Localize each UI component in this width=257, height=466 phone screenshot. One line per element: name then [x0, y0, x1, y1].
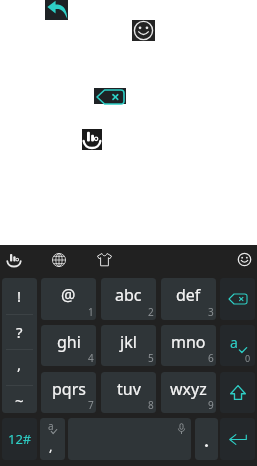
staticText: 1 — [88, 305, 94, 319]
staticText: 2 — [148, 305, 154, 319]
button[interactable]: Theme — [94, 245, 115, 274]
staticText: ghi — [57, 331, 81, 353]
button[interactable]: Backspace — [97, 90, 124, 104]
staticText: def — [176, 284, 201, 306]
staticText: , — [49, 437, 53, 455]
button[interactable]: Keyboard settings — [82, 129, 102, 150]
button[interactable]: abc — [101, 278, 156, 320]
button[interactable]: Undo — [45, 0, 68, 20]
staticText: ! — [17, 286, 22, 306]
staticText: a — [230, 333, 238, 352]
button[interactable]: Emoji — [132, 20, 155, 41]
button[interactable]: jkl — [101, 325, 156, 366]
button[interactable]: @ — [41, 278, 96, 320]
staticText: ? — [16, 322, 23, 342]
button[interactable]: Space — [68, 418, 191, 460]
button[interactable]: Auto correct — [220, 325, 255, 366]
staticText: 12# — [8, 430, 32, 448]
staticText: , — [17, 354, 22, 374]
button[interactable]: 12# — [2, 418, 37, 460]
staticText: jkl — [120, 331, 137, 353]
button[interactable]: Keyboard menu — [3, 245, 24, 274]
staticText: @ — [61, 284, 76, 306]
button[interactable]: wxyz — [161, 372, 216, 413]
button[interactable]: ghi — [41, 325, 96, 366]
button[interactable]: tuv — [101, 372, 156, 413]
button[interactable]: Backspace — [220, 278, 255, 320]
button[interactable]: mno — [161, 325, 216, 366]
staticText: ~ — [15, 390, 24, 410]
button[interactable] — [195, 418, 218, 460]
button[interactable]: ~ — [2, 385, 37, 413]
staticText: 9 — [208, 398, 214, 412]
staticText: wxyz — [170, 378, 207, 400]
staticText: 0 — [245, 352, 251, 364]
staticText: 8 — [148, 398, 154, 412]
staticText: abc — [115, 284, 142, 306]
staticText: 5 — [148, 351, 154, 365]
button[interactable]: Comma — [40, 418, 65, 460]
button[interactable]: Shift — [220, 372, 255, 413]
staticText: 7 — [88, 398, 94, 412]
staticText: mno — [171, 331, 206, 353]
staticText: a — [48, 419, 54, 433]
button[interactable]: ? — [2, 314, 37, 349]
button[interactable]: def — [161, 278, 216, 320]
staticText: 4 — [88, 351, 94, 365]
button[interactable]: Emoji — [234, 245, 255, 274]
button[interactable]: Enter — [220, 418, 255, 460]
staticText: pqrs — [52, 378, 86, 400]
staticText: 6 — [208, 351, 214, 365]
button[interactable]: ! — [2, 278, 37, 314]
button[interactable]: pqrs — [41, 372, 96, 413]
button[interactable]: , — [2, 349, 37, 385]
staticText: tuv — [117, 378, 141, 400]
staticText: 3 — [208, 305, 214, 319]
button[interactable]: Language — [48, 245, 69, 274]
